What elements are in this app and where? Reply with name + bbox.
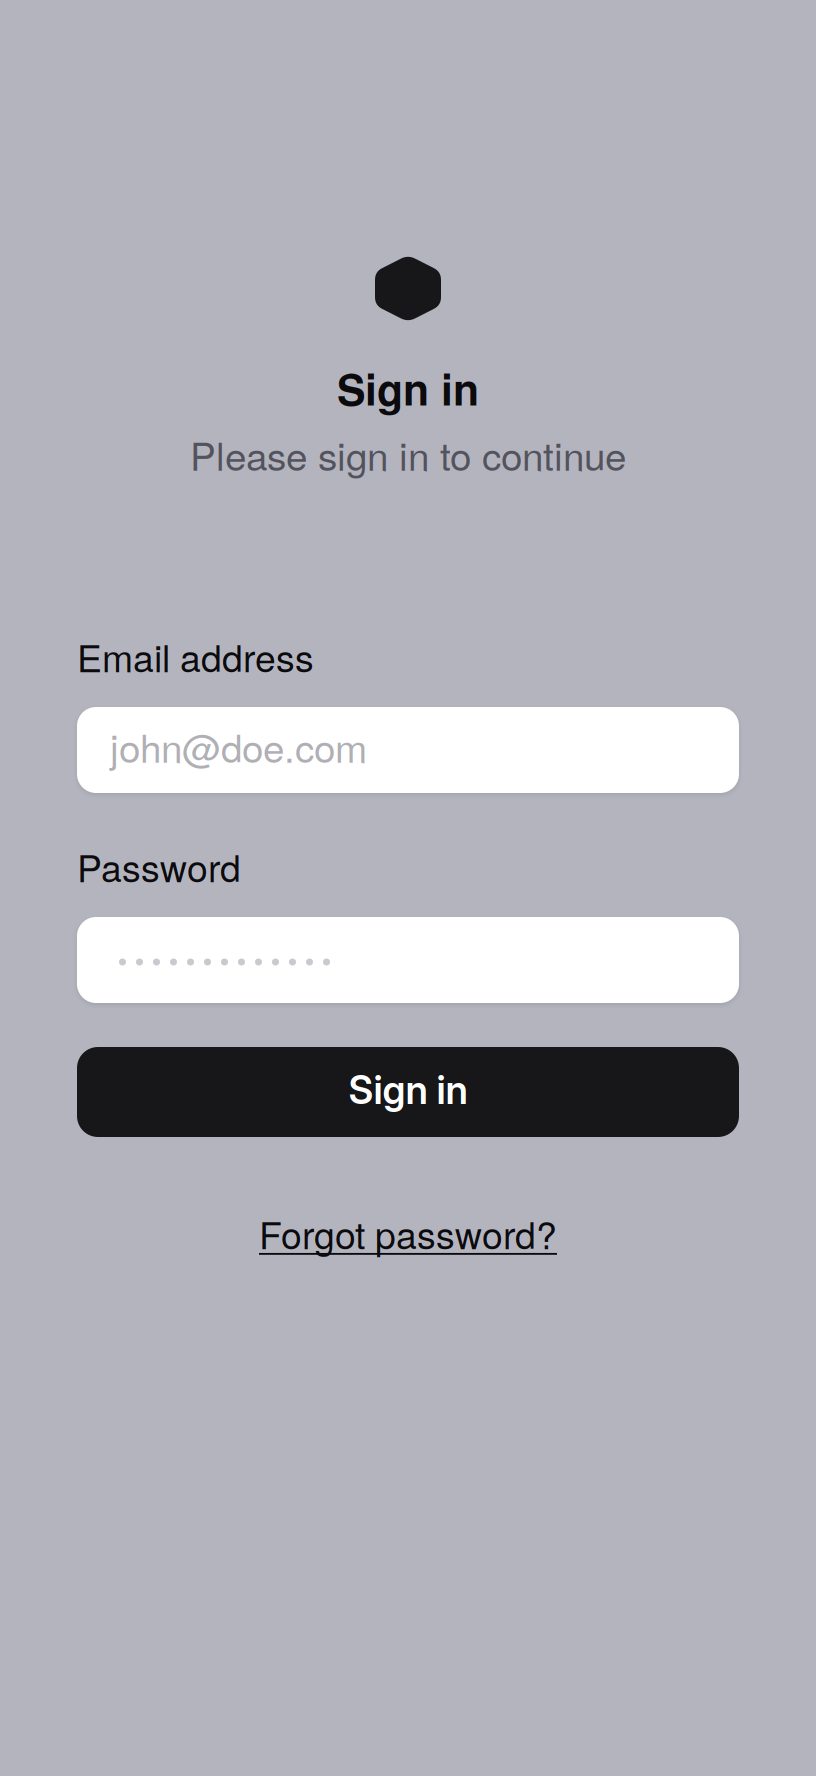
button[interactable]: Sign in <box>77 1047 739 1137</box>
staticText: Sign in <box>348 1067 467 1113</box>
staticText: Forgot password? <box>259 1206 557 1260</box>
staticText: Sign in <box>337 357 479 419</box>
staticText: Password <box>77 839 241 893</box>
staticText: john@doe.com <box>110 718 367 774</box>
button[interactable]: Forgot password? <box>77 1213 739 1253</box>
staticText: Email address <box>77 629 314 683</box>
staticText: Please sign in to continue <box>190 426 626 482</box>
